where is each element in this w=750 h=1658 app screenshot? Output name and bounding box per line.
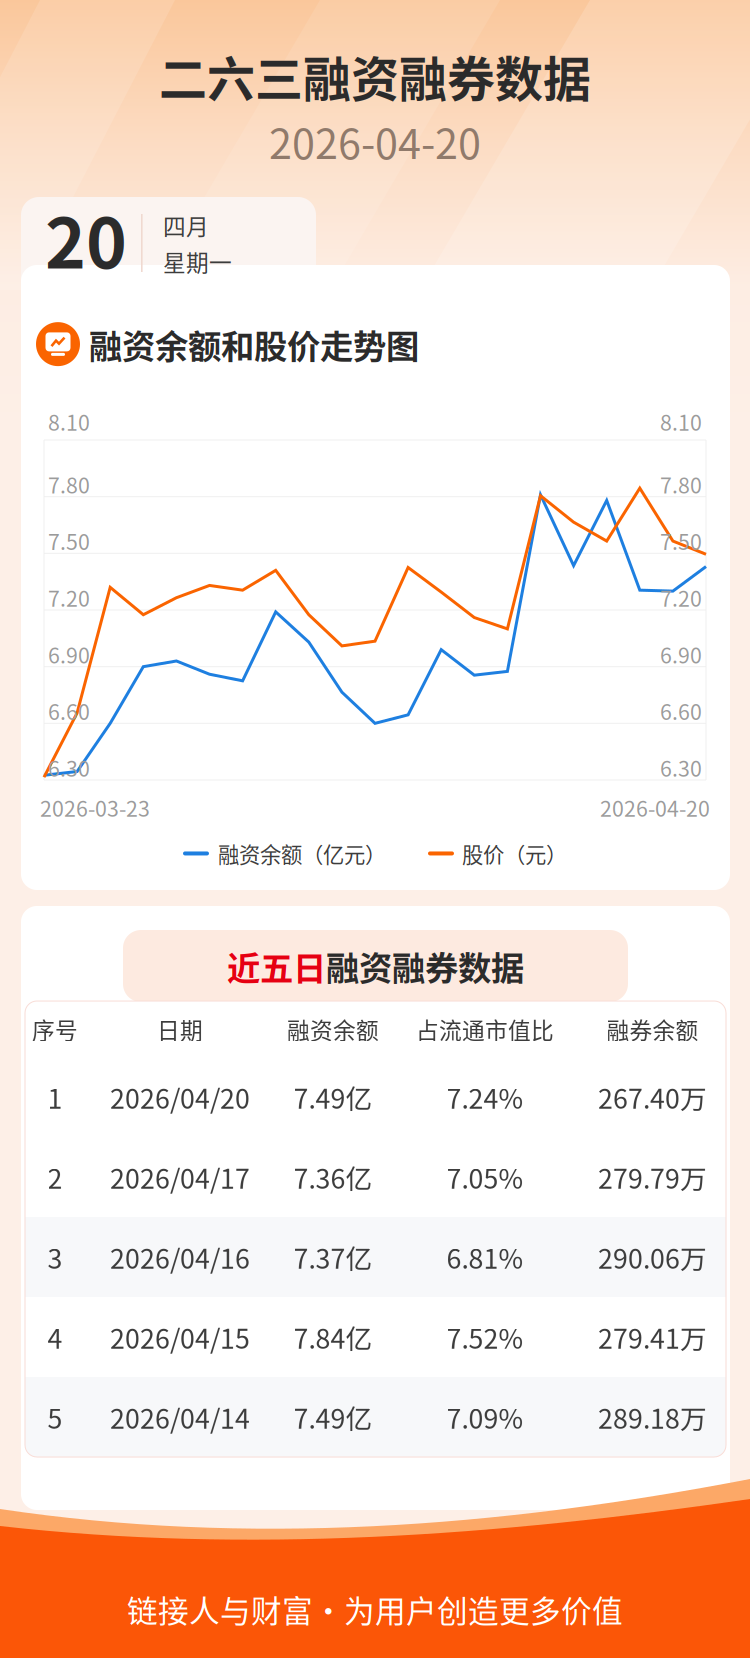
staticText: 2026-03-23 bbox=[40, 792, 150, 823]
staticText: 2026/04/16 bbox=[110, 1238, 250, 1276]
staticText: 20 bbox=[45, 188, 127, 288]
staticText: 融资余额（亿元） bbox=[218, 838, 386, 869]
staticText: 5 bbox=[47, 1398, 62, 1436]
staticText: 2026/04/15 bbox=[110, 1318, 250, 1356]
staticText: 四月 bbox=[163, 209, 209, 242]
staticText: 7.24% bbox=[446, 1078, 523, 1116]
staticText: 7.49亿 bbox=[293, 1398, 372, 1436]
staticText: 290.06万 bbox=[598, 1238, 707, 1276]
staticText: 序号 bbox=[32, 1013, 78, 1045]
staticText: 7.05% bbox=[446, 1158, 523, 1196]
staticText: 2026-04-20 bbox=[269, 111, 481, 171]
staticText: 7.50 bbox=[660, 525, 702, 556]
staticText: 2 bbox=[47, 1158, 62, 1196]
staticText: 7.49亿 bbox=[293, 1078, 372, 1116]
staticText: 2026/04/17 bbox=[110, 1158, 250, 1196]
staticText: 占流通市值比 bbox=[416, 1013, 554, 1045]
staticText: 7.36亿 bbox=[293, 1158, 372, 1196]
staticText: 289.18万 bbox=[598, 1398, 707, 1436]
staticText: 6.81% bbox=[446, 1238, 523, 1276]
staticText: 3 bbox=[47, 1238, 62, 1276]
staticText: 7.37亿 bbox=[293, 1238, 372, 1276]
staticText: 二六三融资融券数据 bbox=[159, 41, 591, 110]
staticText: 6.30 bbox=[48, 752, 90, 783]
staticText: 7.20 bbox=[48, 582, 90, 613]
staticText: 6.90 bbox=[48, 639, 90, 670]
staticText: 7.20 bbox=[660, 582, 702, 613]
staticText: 融券余额 bbox=[606, 1013, 698, 1045]
staticText: 7.50 bbox=[48, 525, 90, 556]
staticText: 2026-04-20 bbox=[600, 792, 710, 823]
staticText: 股价（元） bbox=[462, 838, 567, 869]
staticText: 6.60 bbox=[660, 695, 702, 726]
staticText: 7.80 bbox=[660, 469, 702, 500]
staticText: 2026/04/14 bbox=[110, 1398, 250, 1436]
staticText: 7.09% bbox=[446, 1398, 523, 1436]
staticText: 8.10 bbox=[660, 406, 702, 437]
staticText: 星期一 bbox=[163, 245, 232, 278]
staticText: 6.90 bbox=[660, 639, 702, 670]
staticText: 融资融券数据 bbox=[326, 942, 524, 990]
staticText: 7.80 bbox=[48, 469, 90, 500]
staticText: 链接人与财富·为用户创造更多价值 bbox=[127, 1587, 623, 1631]
staticText: 279.79万 bbox=[598, 1158, 707, 1196]
staticText: 8.10 bbox=[48, 406, 90, 437]
staticText: 日期 bbox=[157, 1013, 203, 1045]
staticText: 1 bbox=[47, 1078, 62, 1116]
staticText: 融资余额 bbox=[287, 1013, 379, 1045]
staticText: 融资余额和股价走势图 bbox=[89, 320, 419, 368]
staticText: 4 bbox=[47, 1318, 62, 1356]
staticText: 6.30 bbox=[660, 752, 702, 783]
staticText: 2026/04/20 bbox=[110, 1078, 250, 1116]
staticText: 279.41万 bbox=[598, 1318, 707, 1356]
staticText: 6.60 bbox=[48, 695, 90, 726]
staticText: 7.52% bbox=[446, 1318, 523, 1356]
staticText: 7.84亿 bbox=[293, 1318, 372, 1356]
staticText: 267.40万 bbox=[598, 1078, 707, 1116]
staticText: 近五日 bbox=[227, 942, 326, 990]
